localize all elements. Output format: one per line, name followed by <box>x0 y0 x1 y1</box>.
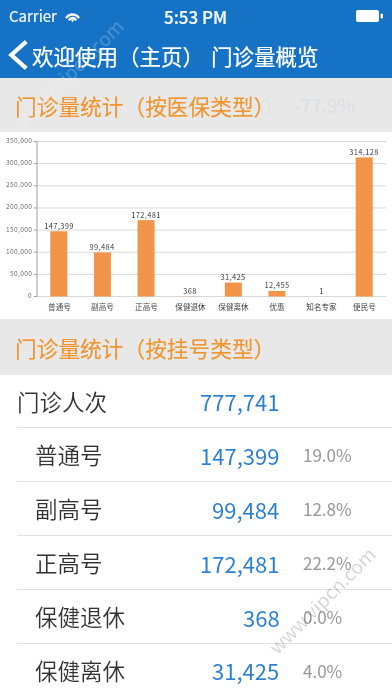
staticText: 50,000 <box>10 268 33 278</box>
staticText: 147,399 <box>200 439 280 471</box>
staticText: 优惠 <box>269 301 285 312</box>
staticText: Carrier <box>9 5 57 27</box>
staticText: 副高号 <box>91 301 114 312</box>
staticText: 普通号 <box>48 301 71 312</box>
staticText: 100,000 <box>6 246 33 256</box>
staticText: 368 <box>243 601 280 633</box>
staticText: 12,455 <box>264 279 290 290</box>
staticText: 147,399 <box>44 220 74 231</box>
staticText: 门诊量概览 <box>211 40 319 71</box>
button[interactable]: 正高号 <box>0 536 392 589</box>
staticText: 31,425 <box>220 271 246 282</box>
staticText: 保健退休 <box>35 600 126 633</box>
staticText: 31,425 <box>212 654 280 686</box>
staticText: 保健离休 <box>35 654 126 687</box>
staticText: 门诊量统计（按挂号类型） <box>15 332 276 363</box>
staticText: 300,000 <box>6 157 33 167</box>
staticText: 正高号 <box>35 546 103 579</box>
button[interactable]: 副高号 <box>0 482 392 535</box>
staticText: www.vipcn.com <box>262 540 381 660</box>
staticText: www.vipcn.com <box>10 12 129 132</box>
staticText: -77.9% <box>294 91 356 119</box>
staticText: 保健离休 <box>218 301 249 312</box>
staticText: 200,000 <box>6 201 33 211</box>
staticText: 门诊人次 <box>17 385 108 418</box>
staticText: 350,000 <box>6 135 33 145</box>
staticText: 0.0% <box>303 604 343 629</box>
staticText: 172,481 <box>200 547 280 579</box>
staticText: 250,000 <box>6 179 33 189</box>
staticText: 0 <box>28 290 33 300</box>
staticText: 普通号 <box>35 438 103 471</box>
staticText: 19.0% <box>303 442 352 467</box>
staticText: 12.8% <box>303 496 352 521</box>
staticText: 314,128 <box>349 146 379 157</box>
staticText: 0 <box>259 89 272 121</box>
button[interactable]: 普通号 <box>0 428 392 481</box>
staticText: 777,741 <box>200 385 280 417</box>
staticText: 门诊量统计（按医保类型） <box>15 90 276 121</box>
staticText: 5:53 PM <box>164 4 228 29</box>
staticText: 正高号 <box>135 301 158 312</box>
staticText: 1 <box>319 285 324 296</box>
staticText: 知名专家 <box>306 301 337 312</box>
staticText: 保健退休 <box>175 301 206 312</box>
button[interactable]: 返回 <box>3 32 32 78</box>
button[interactable]: 保健退休 <box>0 590 392 643</box>
staticText: 172,481 <box>131 209 161 220</box>
staticText: 4.0% <box>303 658 343 683</box>
button[interactable]: 保健离休 <box>0 644 392 696</box>
staticText: 便民号 <box>353 301 376 312</box>
staticText: 368 <box>183 285 197 296</box>
staticText: 99,484 <box>89 241 115 252</box>
staticText: 欢迎使用（主页） <box>32 40 205 71</box>
staticText: 99,484 <box>212 493 280 525</box>
staticText: 150,000 <box>6 224 33 234</box>
staticText: 22.2% <box>303 550 352 575</box>
button[interactable]: 门诊人次 <box>0 375 392 427</box>
staticText: 副高号 <box>35 492 103 525</box>
